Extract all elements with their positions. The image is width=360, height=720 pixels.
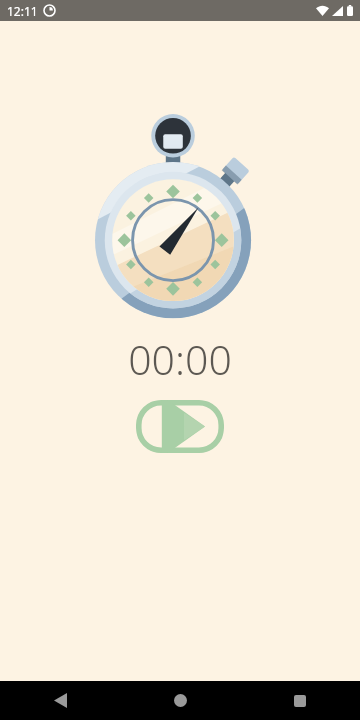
staticText: 12:11 bbox=[7, 3, 38, 19]
button[interactable]: Recents bbox=[240, 681, 360, 720]
button[interactable]: Home bbox=[120, 681, 240, 720]
staticText: 00:00 bbox=[128, 331, 232, 375]
button[interactable]: Back bbox=[0, 681, 120, 720]
button[interactable]: Start bbox=[136, 400, 224, 453]
